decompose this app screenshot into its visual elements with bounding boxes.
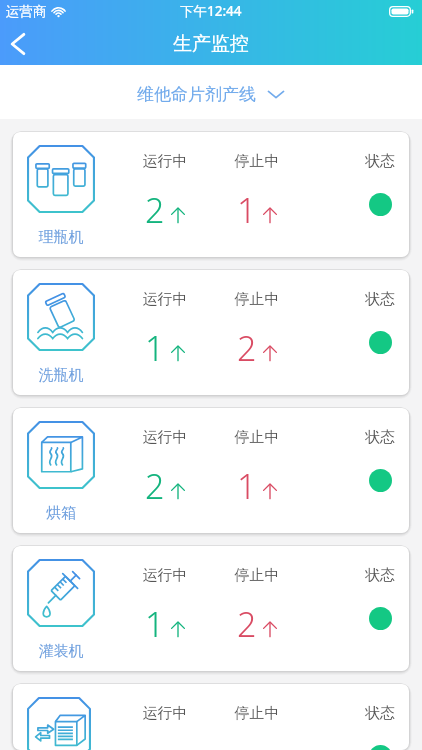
button[interactable]: Back xyxy=(0,24,40,63)
staticText: 运行中 xyxy=(139,566,191,585)
staticText: 下午12:44 xyxy=(180,2,242,20)
button[interactable]: 灌装机 xyxy=(13,546,409,671)
staticText: 维他命片剂产线 xyxy=(137,84,256,105)
staticText: 运行中 xyxy=(139,152,191,171)
button[interactable]: 轧盖机 xyxy=(13,684,409,750)
staticText: 运行中 xyxy=(139,428,191,447)
button[interactable]: 洗瓶机 xyxy=(13,270,409,395)
staticText: 1 xyxy=(237,187,257,233)
staticText: 停止中 xyxy=(231,152,283,171)
button[interactable]: 烘箱 xyxy=(13,408,409,533)
staticText: 烘箱 xyxy=(26,504,96,523)
staticText: 状态 xyxy=(353,704,407,723)
staticText: 理瓶机 xyxy=(26,228,96,247)
staticText: 运行中 xyxy=(139,704,191,723)
staticText: 停止中 xyxy=(231,290,283,309)
staticText: 停止中 xyxy=(231,566,283,585)
staticText: 2 xyxy=(145,187,165,233)
staticText: 1 xyxy=(145,325,165,371)
staticText: 状态 xyxy=(353,566,407,585)
staticText: 运营商 xyxy=(6,3,47,20)
staticText: 状态 xyxy=(353,290,407,309)
staticText: 1 xyxy=(145,601,165,647)
staticText: 停止中 xyxy=(231,428,283,447)
staticText: 运行中 xyxy=(139,290,191,309)
button[interactable]: 维他命片剂产线 xyxy=(131,78,291,111)
staticText: 灌装机 xyxy=(26,642,96,661)
staticText: 2 xyxy=(237,325,257,371)
staticText: 状态 xyxy=(353,152,407,171)
staticText: 2 xyxy=(237,601,257,647)
staticText: 停止中 xyxy=(231,704,283,723)
staticText: 洗瓶机 xyxy=(26,366,96,385)
staticText: 生产监控 xyxy=(173,32,249,56)
staticText: 1 xyxy=(237,463,257,509)
button[interactable]: 理瓶机 xyxy=(13,132,409,257)
staticText: 2 xyxy=(145,463,165,509)
staticText: 状态 xyxy=(353,428,407,447)
